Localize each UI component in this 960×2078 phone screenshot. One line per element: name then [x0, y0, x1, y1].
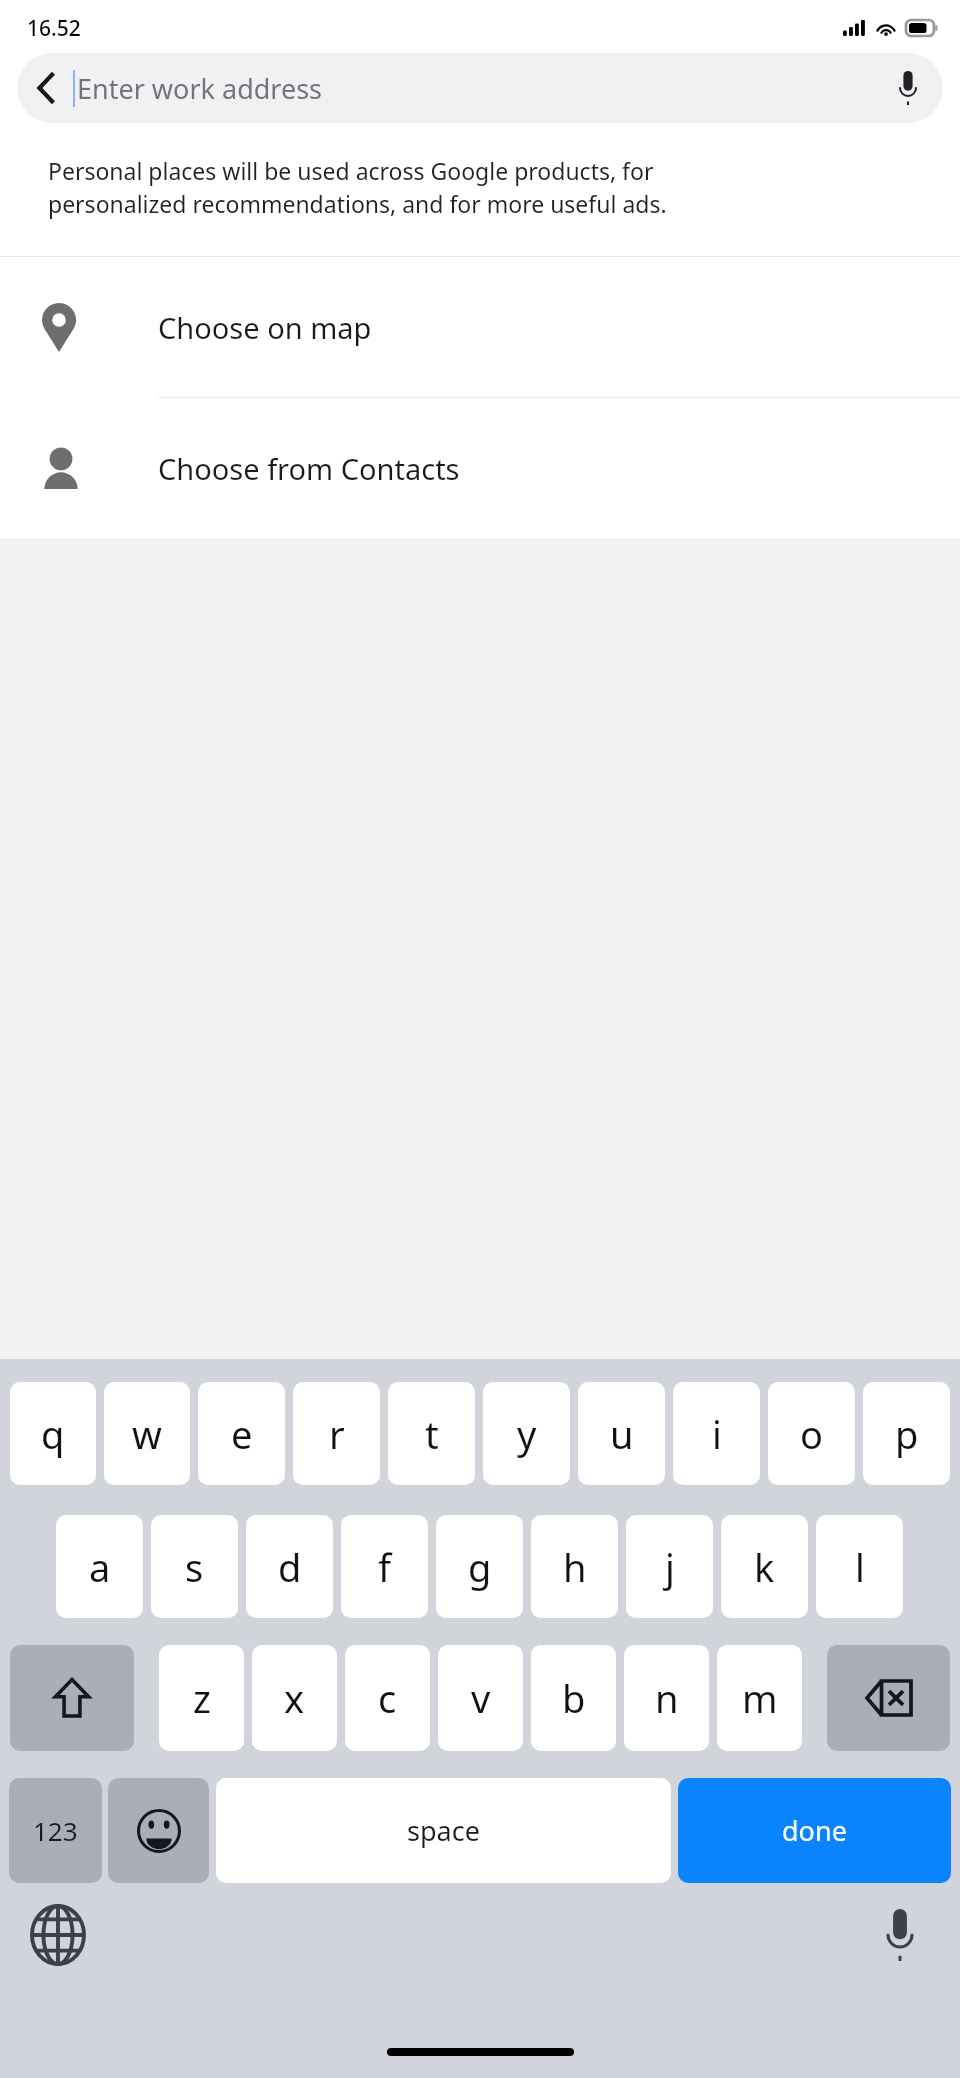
staticText: 123: [33, 1813, 78, 1848]
staticText: b: [562, 1672, 586, 1724]
staticText: u: [610, 1408, 634, 1460]
staticText: w: [132, 1408, 162, 1460]
staticText: 16.52: [27, 14, 81, 43]
staticText: j: [665, 1541, 675, 1593]
button[interactable]: i: [673, 1382, 760, 1485]
button[interactable]: o: [768, 1382, 855, 1485]
button[interactable]: n: [624, 1645, 709, 1751]
button[interactable]: Backspace: [827, 1645, 950, 1751]
staticText: Choose on map: [158, 308, 372, 347]
button[interactable]: 123: [9, 1778, 102, 1883]
button[interactable]: Shift: [10, 1645, 134, 1751]
button[interactable]: Emoji: [108, 1778, 209, 1883]
staticText: done: [782, 1812, 847, 1849]
button[interactable]: done: [678, 1778, 951, 1883]
staticText: f: [378, 1541, 392, 1593]
button[interactable]: Choose from Contacts: [0, 398, 960, 539]
button[interactable]: e: [198, 1382, 285, 1485]
staticText: q: [41, 1408, 65, 1460]
staticText: Enter work address: [77, 70, 323, 107]
button[interactable]: y: [483, 1382, 570, 1485]
button[interactable]: v: [438, 1645, 523, 1751]
button[interactable]: k: [721, 1515, 808, 1618]
staticText: n: [655, 1672, 679, 1724]
button[interactable]: w: [104, 1382, 190, 1485]
staticText: d: [278, 1541, 302, 1593]
button[interactable]: m: [717, 1645, 802, 1751]
button[interactable]: g: [436, 1515, 523, 1618]
staticText: g: [468, 1541, 492, 1593]
button[interactable]: Voice search: [880, 60, 936, 116]
staticText: x: [284, 1672, 305, 1724]
staticText: v: [471, 1672, 491, 1724]
staticText: h: [563, 1541, 587, 1593]
button[interactable]: b: [531, 1645, 616, 1751]
button[interactable]: Dictation: [862, 1897, 938, 1973]
staticText: e: [231, 1408, 253, 1460]
button[interactable]: Back: [17, 59, 75, 117]
button[interactable]: c: [345, 1645, 430, 1751]
button[interactable]: Change keyboard: [20, 1897, 96, 1973]
staticText: i: [712, 1408, 722, 1460]
staticText: space: [407, 1812, 480, 1849]
button[interactable]: q: [10, 1382, 96, 1485]
staticText: p: [895, 1408, 919, 1460]
staticText: t: [425, 1408, 439, 1460]
staticText: y: [517, 1408, 537, 1460]
button[interactable]: u: [578, 1382, 665, 1485]
staticText: c: [378, 1672, 397, 1724]
button[interactable]: r: [293, 1382, 380, 1485]
staticText: m: [742, 1672, 778, 1724]
button[interactable]: Choose on map: [0, 257, 960, 398]
button[interactable]: a: [56, 1515, 143, 1618]
staticText: Choose from Contacts: [158, 449, 460, 488]
staticText: Personal places will be used across Goog…: [48, 155, 667, 220]
button[interactable]: space: [216, 1778, 671, 1883]
staticText: o: [800, 1408, 823, 1460]
button[interactable]: z: [159, 1645, 244, 1751]
staticText: k: [754, 1541, 775, 1593]
staticText: s: [185, 1541, 204, 1593]
button[interactable]: p: [863, 1382, 950, 1485]
staticText: z: [193, 1672, 211, 1724]
button[interactable]: x: [252, 1645, 337, 1751]
staticText: l: [855, 1541, 865, 1593]
button[interactable]: f: [341, 1515, 428, 1618]
staticText: a: [89, 1541, 111, 1593]
button[interactable]: h: [531, 1515, 618, 1618]
button[interactable]: t: [388, 1382, 475, 1485]
button[interactable]: l: [816, 1515, 903, 1618]
button[interactable]: d: [246, 1515, 333, 1618]
staticText: r: [329, 1408, 345, 1460]
button[interactable]: j: [626, 1515, 713, 1618]
button[interactable]: s: [151, 1515, 238, 1618]
